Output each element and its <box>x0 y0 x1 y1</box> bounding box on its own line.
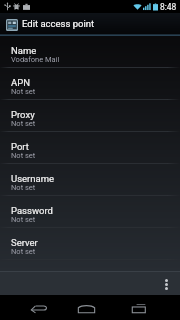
button[interactable]: Username <box>0 164 180 196</box>
button[interactable]: Home <box>64 295 110 320</box>
staticText: Name <box>11 45 37 56</box>
staticText: Password <box>11 205 53 216</box>
staticText: Not set <box>11 119 36 128</box>
button[interactable]: Edit access point <box>0 13 180 34</box>
button[interactable]: Name <box>0 36 180 68</box>
staticText: Username <box>11 173 55 184</box>
staticText: APN <box>11 77 30 88</box>
button[interactable]: Password <box>0 196 180 228</box>
staticText: Not set <box>11 87 36 96</box>
staticText: Vodafone Mail <box>11 55 60 64</box>
staticText: Not set <box>11 183 36 192</box>
staticText: Not set <box>11 247 36 256</box>
button[interactable]: More options <box>156 271 176 295</box>
staticText: Not set <box>11 215 36 224</box>
staticText: Proxy <box>11 109 35 120</box>
staticText: 8:48 <box>160 2 177 12</box>
staticText: Port <box>11 141 29 152</box>
button[interactable]: Proxy <box>0 100 180 132</box>
staticText: Server <box>11 237 38 248</box>
button[interactable]: APN <box>0 68 180 100</box>
button[interactable]: Port <box>0 132 180 164</box>
staticText: Edit access point <box>22 18 95 29</box>
button[interactable]: Recent apps <box>118 295 164 320</box>
button[interactable]: Back <box>16 295 62 320</box>
button[interactable]: Server <box>0 228 180 260</box>
staticText: Not set <box>11 151 36 160</box>
